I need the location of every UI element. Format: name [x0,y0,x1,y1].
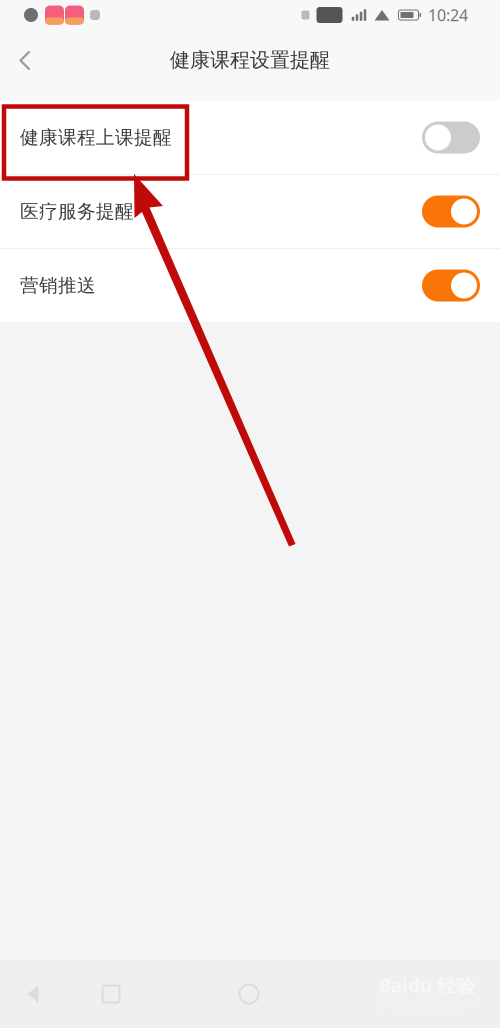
staticText: 医疗服务提醒 [20,200,134,223]
staticText: Baidu 经验 [379,973,475,998]
button[interactable]: Back [0,36,50,85]
button[interactable]: 医疗服务提醒 [0,175,500,248]
button[interactable]: 营销推送 [0,249,500,322]
staticText: 健康课程上课提醒 [20,126,172,149]
staticText: 健康课程设置提醒 [170,48,330,72]
staticText: 营销推送 [20,274,96,297]
staticText: 10:24 [428,4,468,26]
button[interactable]: 健康课程上课提醒 [0,101,500,174]
